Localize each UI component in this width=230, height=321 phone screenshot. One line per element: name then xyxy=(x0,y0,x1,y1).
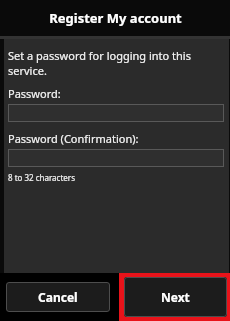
staticText: Set a password for logging into this ser… xyxy=(8,48,191,78)
staticText: 8 to 32 characters xyxy=(8,172,75,183)
button[interactable]: Next xyxy=(124,277,227,317)
button[interactable]: Password input field xyxy=(8,104,224,122)
staticText: Next xyxy=(161,289,190,305)
button[interactable]: Password confirmation input field xyxy=(8,149,224,167)
staticText: Register My account xyxy=(49,9,182,27)
staticText: Cancel xyxy=(38,289,78,305)
staticText: Password (Confirmation): xyxy=(8,131,139,146)
button[interactable]: Cancel xyxy=(6,282,110,312)
staticText: Password: xyxy=(8,86,61,101)
